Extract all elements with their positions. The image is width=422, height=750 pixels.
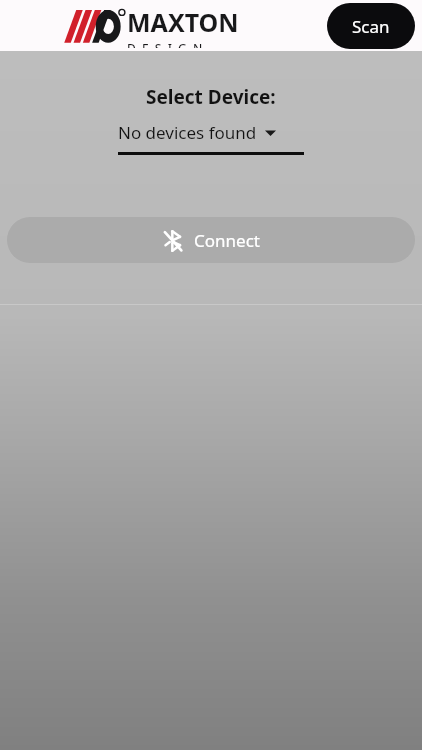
staticText: MAXTON <box>127 5 239 39</box>
staticText: No devices found <box>118 121 257 144</box>
staticText: Scan <box>352 15 390 38</box>
button[interactable]: Bluetooth disabled <box>7 217 415 263</box>
staticText: Connect <box>194 229 260 252</box>
button[interactable]: Scan <box>327 3 415 49</box>
staticText: Select Device: <box>146 84 276 110</box>
staticText: DESIGN <box>127 40 209 48</box>
other: Bluetooth disabled <box>162 230 184 252</box>
button[interactable]: No devices found <box>118 121 304 155</box>
